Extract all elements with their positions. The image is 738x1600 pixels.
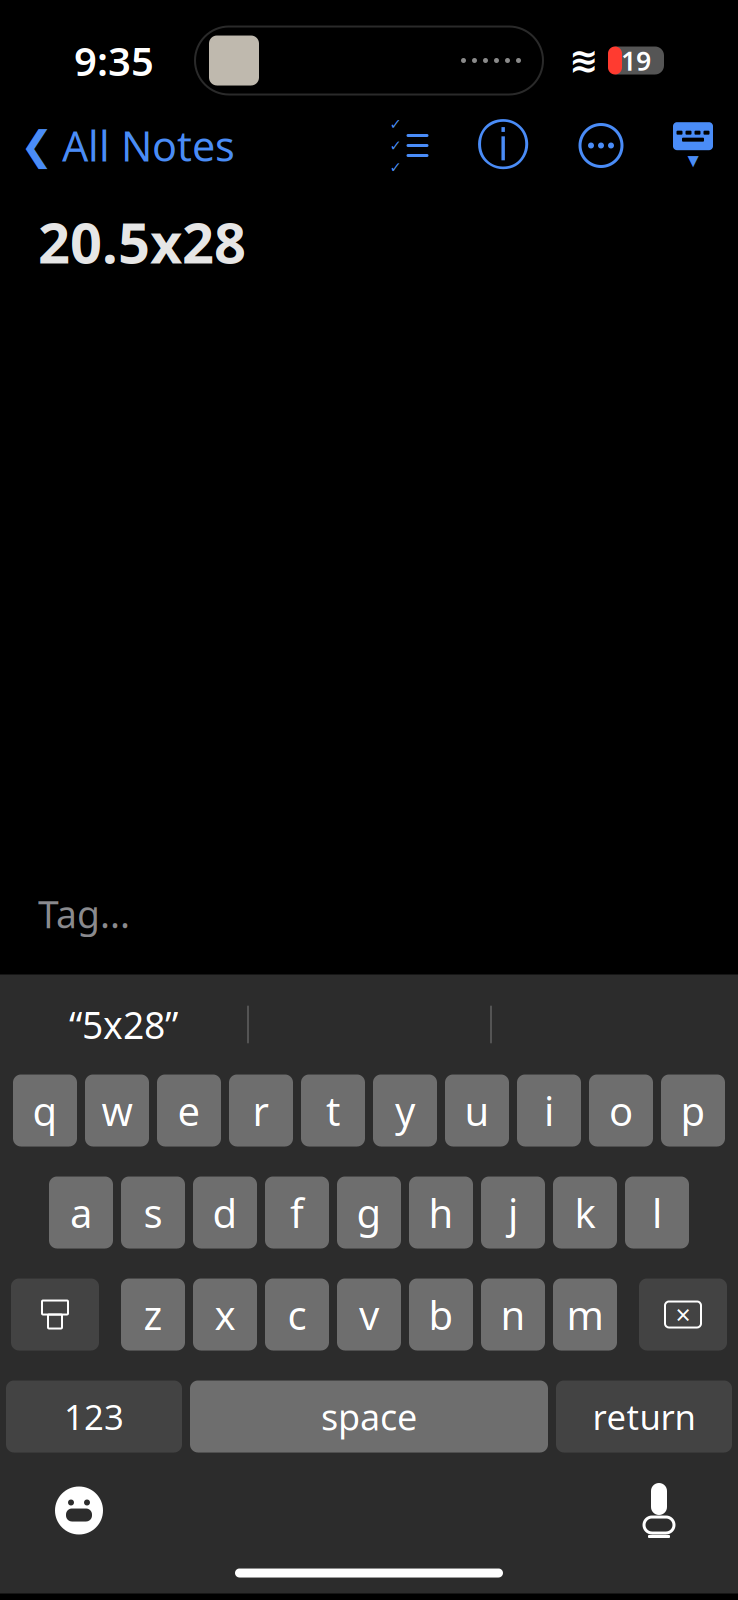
staticText: y — [395, 1084, 415, 1137]
staticText: 20.5x28 — [38, 204, 246, 279]
button[interactable]: h — [409, 1176, 473, 1248]
button[interactable]: v — [337, 1278, 401, 1350]
staticText: b — [428, 1288, 453, 1341]
staticText: m — [566, 1288, 603, 1341]
staticText: l — [652, 1186, 662, 1239]
button[interactable]: j — [481, 1176, 545, 1248]
staticText: v — [359, 1288, 379, 1341]
staticText: 19 — [621, 43, 651, 78]
button[interactable]: f — [265, 1176, 329, 1248]
button[interactable]: w — [85, 1074, 149, 1146]
staticText: q — [32, 1084, 57, 1137]
staticText: ⓘ — [476, 113, 529, 178]
button[interactable]: Shift — [11, 1278, 99, 1350]
button[interactable]: r — [229, 1074, 293, 1146]
button[interactable]: t — [301, 1074, 365, 1146]
button[interactable]: a — [49, 1176, 113, 1248]
staticText: All Notes — [62, 118, 235, 173]
button[interactable]: Delete — [639, 1278, 727, 1350]
staticText: ≋ — [569, 41, 598, 80]
button[interactable]: More — [576, 120, 626, 170]
button[interactable]: u — [445, 1074, 509, 1146]
staticText: 9:35 — [74, 34, 154, 87]
staticText: Tag... — [38, 889, 130, 938]
staticText: return — [592, 1393, 695, 1439]
staticText: × — [675, 1297, 690, 1332]
staticText: space — [321, 1393, 417, 1440]
staticText: g — [356, 1186, 381, 1239]
button[interactable]: Info — [478, 120, 528, 170]
staticText: p — [680, 1084, 705, 1137]
button[interactable]: “5x28” — [0, 993, 247, 1055]
staticText: “5x28” — [69, 1000, 178, 1049]
staticText: 123 — [64, 1393, 124, 1439]
staticText: x — [214, 1288, 235, 1341]
button[interactable]: c — [265, 1278, 329, 1350]
staticText: c — [287, 1288, 306, 1341]
staticText: u — [464, 1084, 489, 1137]
staticText: f — [290, 1186, 304, 1239]
button[interactable]: b — [409, 1278, 473, 1350]
button[interactable]: x — [193, 1278, 257, 1350]
staticText: r — [252, 1084, 269, 1137]
staticText: w — [101, 1084, 132, 1137]
staticText: t — [326, 1084, 340, 1137]
staticText: ▼ — [687, 152, 698, 169]
button[interactable]: Checklist — [382, 125, 436, 165]
button[interactable]: p — [661, 1074, 725, 1146]
button[interactable]: l — [625, 1176, 689, 1248]
staticText: i — [544, 1084, 554, 1137]
staticText: ✓ — [389, 137, 401, 154]
staticText: h — [428, 1186, 453, 1239]
button[interactable]: q — [13, 1074, 77, 1146]
button[interactable]: d — [193, 1176, 257, 1248]
staticText: z — [143, 1288, 162, 1341]
staticText: e — [177, 1084, 200, 1137]
staticText: ✓ — [389, 159, 401, 175]
staticText: ❮ — [20, 123, 54, 168]
staticText: ✓ — [389, 115, 401, 132]
button[interactable]: return — [556, 1380, 732, 1452]
button[interactable]: y — [373, 1074, 437, 1146]
button[interactable]: Hide Keyboard — [670, 122, 716, 168]
staticText: j — [508, 1186, 518, 1239]
staticText: o — [609, 1084, 633, 1137]
button[interactable]: z — [121, 1278, 185, 1350]
staticText: k — [574, 1186, 595, 1239]
button[interactable]: Emoji — [44, 1475, 114, 1545]
button[interactable]: g — [337, 1176, 401, 1248]
button[interactable]: e — [157, 1074, 221, 1146]
staticText: n — [500, 1288, 525, 1341]
staticText: d — [212, 1186, 237, 1239]
button[interactable]: k — [553, 1176, 617, 1248]
button[interactable]: space — [190, 1380, 548, 1452]
button[interactable]: m — [553, 1278, 617, 1350]
button[interactable]: i — [517, 1074, 581, 1146]
button[interactable]: n — [481, 1278, 545, 1350]
staticText: a — [70, 1186, 92, 1239]
button[interactable]: s — [121, 1176, 185, 1248]
button[interactable]: Dictate — [624, 1475, 694, 1545]
staticText: s — [143, 1186, 162, 1239]
button[interactable]: 123 — [6, 1380, 182, 1452]
button[interactable]: o — [589, 1074, 653, 1146]
button[interactable]: ❮ — [0, 110, 235, 181]
